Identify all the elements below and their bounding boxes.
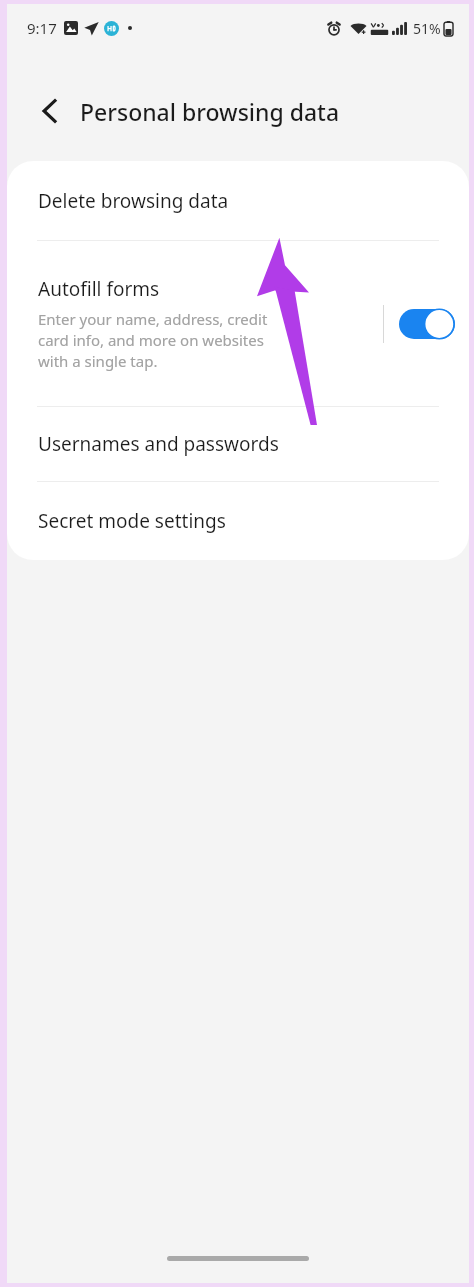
staticText: Usernames and passwords [38, 431, 279, 457]
staticText: 51% [413, 19, 441, 38]
staticText: Delete browsing data [38, 188, 229, 214]
staticText: Personal browsing data [80, 96, 340, 127]
button[interactable]: Autofill forms [7, 276, 383, 372]
button[interactable]: Back [27, 89, 71, 133]
button[interactable]: Usernames and passwords [7, 407, 469, 481]
button[interactable]: Delete browsing data [7, 161, 469, 240]
staticText: Autofill forms [38, 276, 160, 302]
staticText: Secret mode settings [38, 508, 226, 534]
staticText: Enter your name, address, credit card in… [38, 309, 268, 372]
button[interactable]: Autofill forms toggle [384, 294, 469, 354]
button[interactable]: Secret mode settings [7, 482, 469, 560]
staticText: 9:17 [27, 18, 57, 38]
